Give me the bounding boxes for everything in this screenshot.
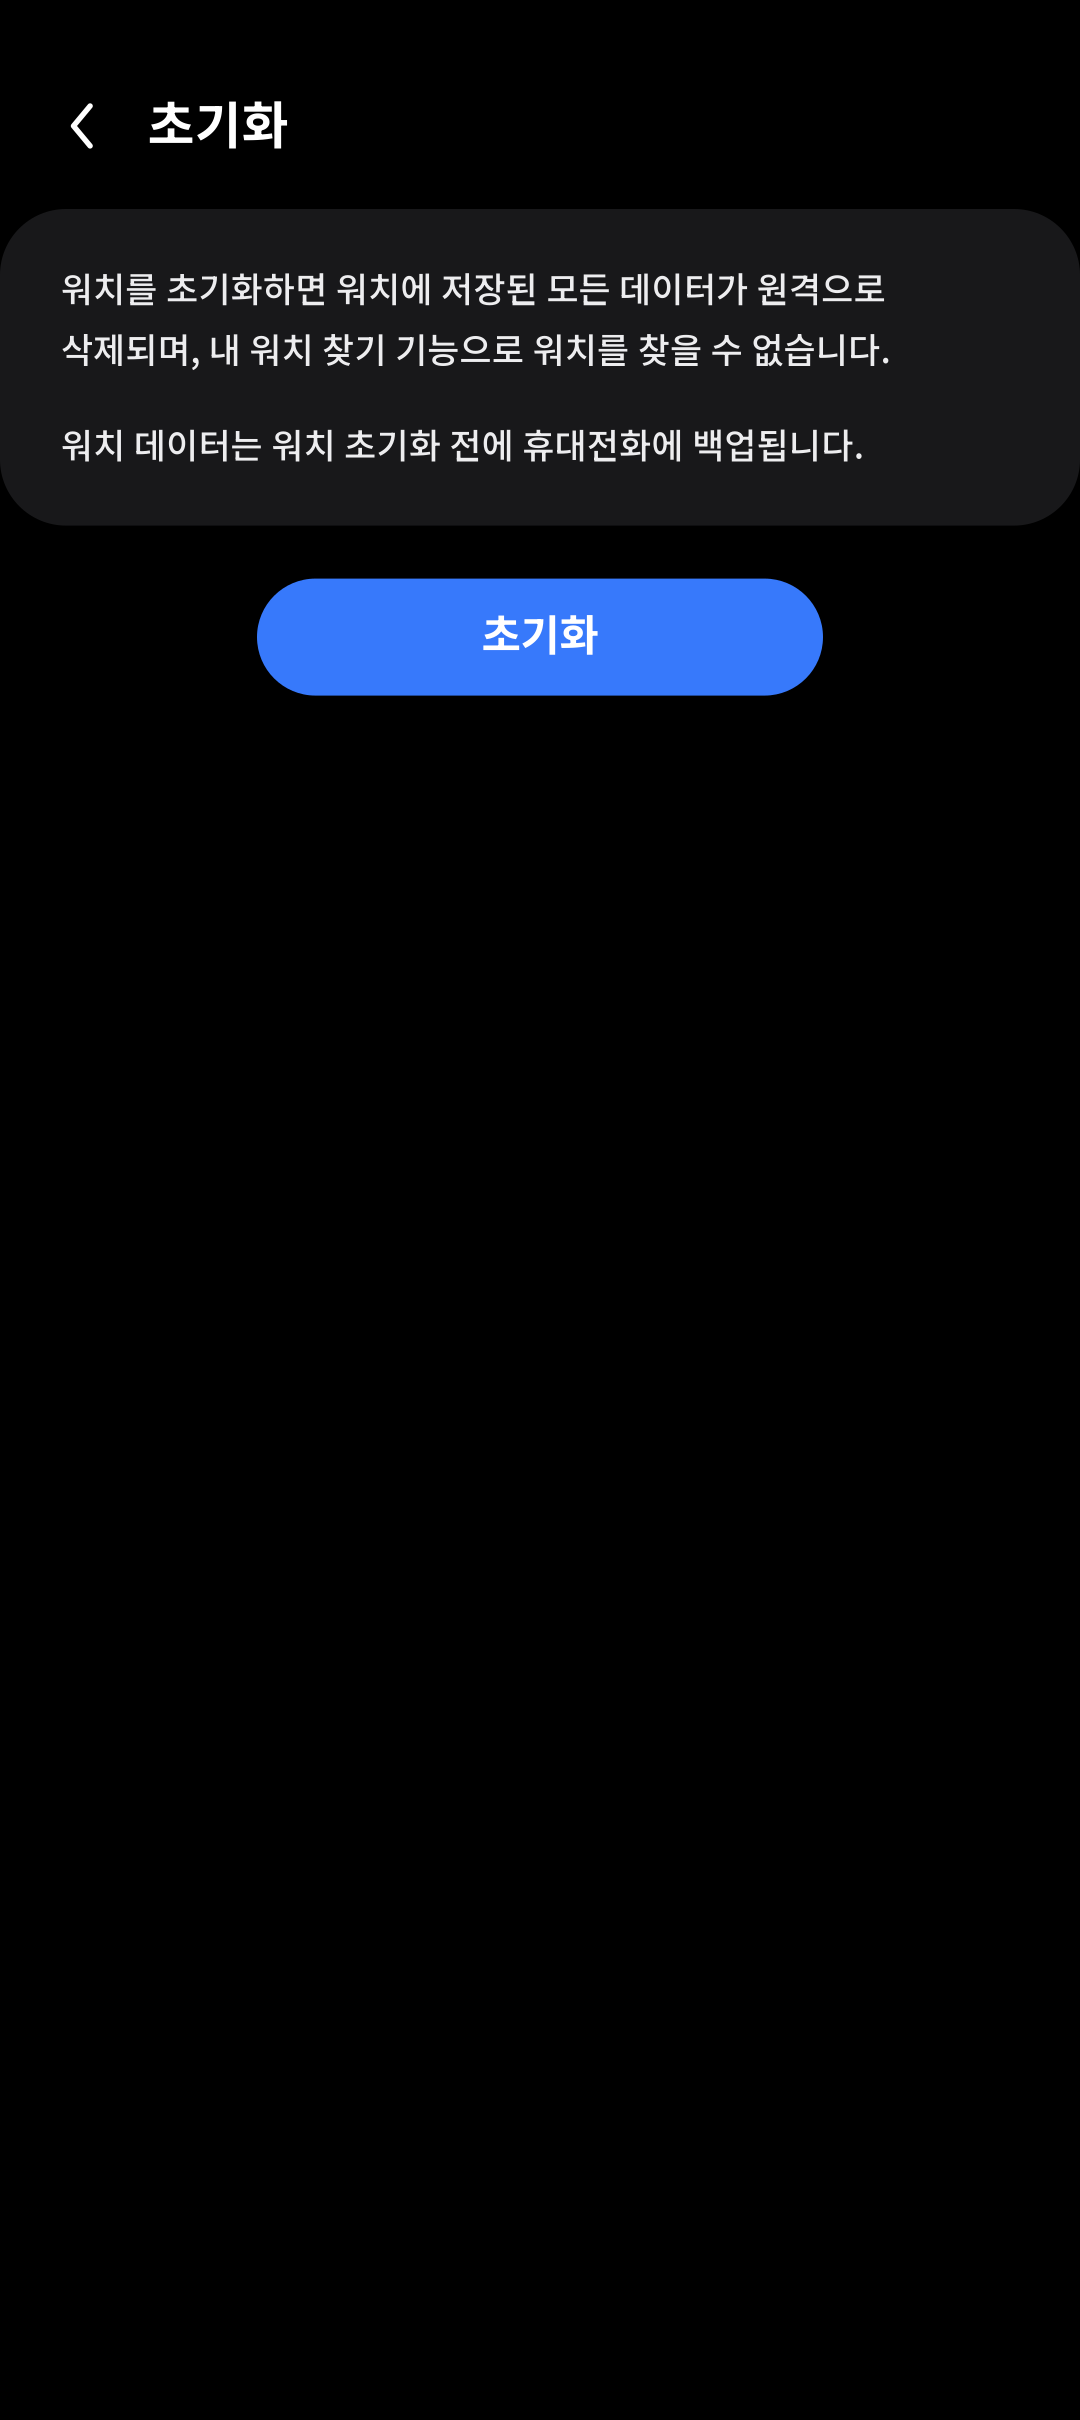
staticText: 워치 데이터는 워치 초기화 전에 휴대전화에 백업됩니다. xyxy=(61,418,864,468)
button[interactable]: Back xyxy=(0,0,128,171)
staticText: 워치를 초기화하면 워치에 저장된 모든 데이터가 원격으로 xyxy=(61,262,886,312)
staticText: 삭제되며, 내 워치 찾기 기능으로 워치를 찾을 수 없습니다. xyxy=(61,323,891,373)
staticText: 초기화 xyxy=(481,601,598,663)
button[interactable]: 초기화 xyxy=(257,579,823,696)
staticText: 초기화 xyxy=(148,85,289,158)
